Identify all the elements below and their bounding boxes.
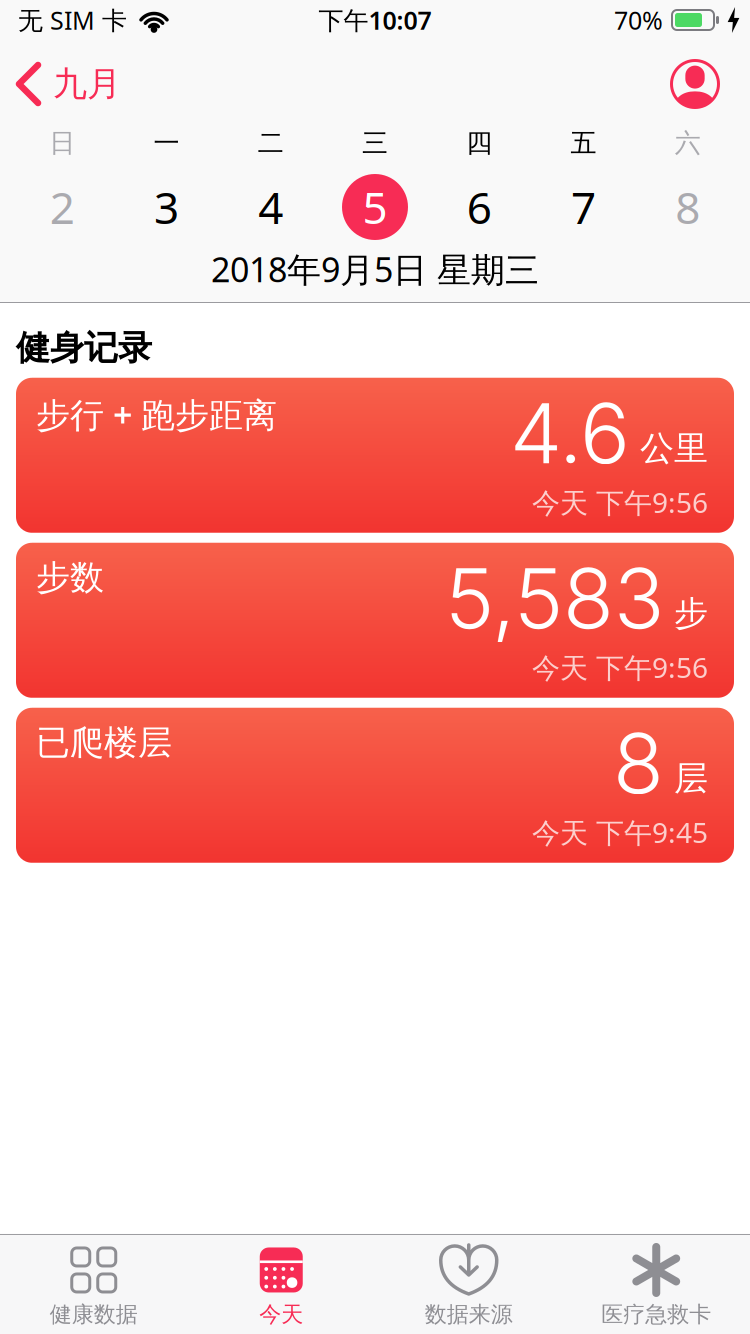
button[interactable]: 8 [636, 178, 740, 236]
staticText: 7 [571, 178, 596, 236]
staticText: 步数 [36, 557, 104, 599]
staticText: 步 [674, 592, 708, 634]
staticText: 医疗急救卡 [601, 1301, 711, 1328]
staticText: 70% [614, 3, 663, 37]
button[interactable]: 数据来源 [375, 1245, 562, 1328]
staticText: 数据来源 [425, 1301, 513, 1328]
staticText: 5,583 [445, 548, 664, 648]
staticText: 今天 [259, 1301, 303, 1328]
staticText: 一 [153, 127, 179, 159]
staticText: 步行 + 跑步距离 [36, 392, 277, 437]
staticText: 无 SIM 卡 [18, 3, 127, 37]
staticText: 下午10:07 [318, 3, 431, 37]
staticText: 层 [674, 757, 708, 799]
button[interactable]: 今天 [187, 1245, 375, 1328]
staticText: 4 [258, 178, 283, 236]
staticText: 日 [49, 127, 75, 159]
staticText: 健康数据 [50, 1301, 138, 1328]
staticText: 二 [258, 127, 284, 159]
staticText: 8 [675, 178, 700, 236]
staticText: 2018年9月5日 星期三 [211, 246, 539, 292]
staticText: 四 [466, 127, 492, 159]
staticText: 8 [613, 713, 664, 813]
button[interactable]: 2 [10, 178, 114, 236]
button[interactable]: 健康数据 [0, 1245, 187, 1328]
button[interactable]: 3 [114, 178, 219, 236]
staticText: 六 [675, 127, 701, 159]
button[interactable]: 7 [531, 178, 636, 236]
staticText: 公里 [640, 427, 708, 469]
staticText: 九月 [53, 63, 121, 105]
staticText: 今天 下午9:45 [532, 814, 708, 851]
staticText: 三 [362, 127, 388, 159]
button[interactable]: 步数 [16, 543, 734, 698]
button[interactable]: 4 [219, 178, 323, 236]
staticText: 6 [467, 178, 492, 236]
button[interactable]: 九月 [19, 63, 121, 105]
staticText: 今天 下午9:56 [532, 649, 708, 686]
button[interactable]: 医疗急救卡 [562, 1245, 750, 1328]
button[interactable]: 5 [323, 174, 427, 240]
staticText: 3 [154, 178, 179, 236]
button[interactable]: 已爬楼层 [16, 708, 734, 863]
staticText: 4.6 [510, 383, 630, 483]
staticText: 5 [362, 178, 387, 236]
staticText: 已爬楼层 [36, 722, 172, 764]
staticText: 健身记录 [16, 327, 152, 369]
button[interactable]: 6 [427, 178, 531, 236]
staticText: 今天 下午9:56 [532, 484, 708, 521]
staticText: 五 [571, 127, 597, 159]
button[interactable]: 步行 + 跑步距离 [16, 378, 734, 533]
button[interactable]: Profile [670, 59, 720, 109]
staticText: 2 [50, 178, 75, 236]
